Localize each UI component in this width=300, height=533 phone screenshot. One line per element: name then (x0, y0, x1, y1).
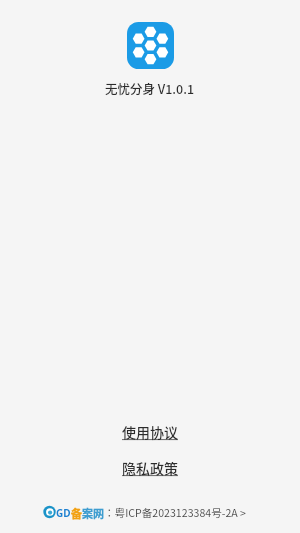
other: App icon (127, 22, 174, 69)
button[interactable]: 使用协议 (122, 422, 178, 442)
staticText: 无忧分身 V1.0.1 (105, 79, 195, 97)
staticText: ：粤ICP备2023123384号-2A > (104, 505, 246, 520)
staticText: 使用协议 (122, 422, 178, 442)
button[interactable]: 隐私政策 (122, 458, 178, 478)
button[interactable]: GD (43, 505, 246, 520)
staticText: 案网 (82, 505, 104, 520)
staticText: GD (56, 506, 71, 520)
staticText: 备 (71, 505, 82, 520)
staticText: 隐私政策 (122, 458, 178, 478)
